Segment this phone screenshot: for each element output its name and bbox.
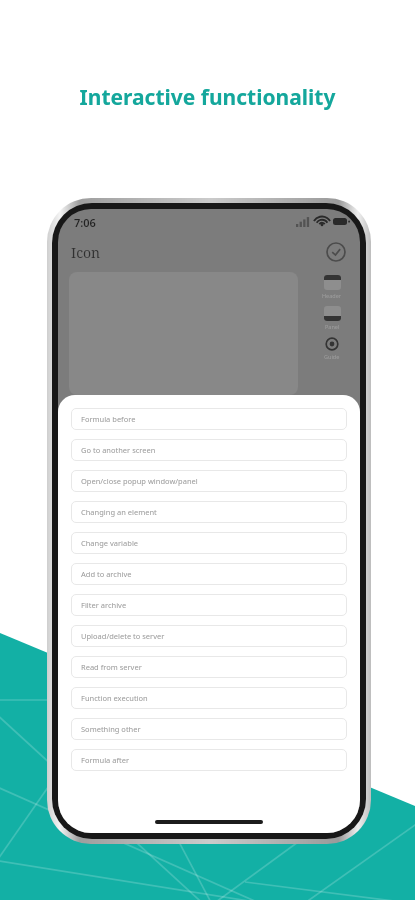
button[interactable]: Read from server: [71, 656, 347, 678]
button[interactable]: Formula after: [71, 749, 347, 771]
staticText: Interactive functionality: [0, 83, 415, 112]
staticText: Function execution: [81, 693, 148, 703]
staticText: Open/close popup window/panel: [81, 476, 198, 486]
staticText: Change variable: [81, 538, 139, 548]
button[interactable]: Guide: [324, 337, 340, 360]
button[interactable]: Formula before: [71, 408, 347, 430]
button[interactable]: Verified: [325, 241, 347, 263]
staticText: Formula before: [81, 414, 136, 424]
staticText: Something other: [81, 724, 141, 734]
button[interactable]: Open/close popup window/panel: [71, 470, 347, 492]
button[interactable]: Changing an element: [71, 501, 347, 523]
staticText: 7:06: [74, 215, 96, 230]
staticText: Filter archive: [81, 600, 127, 610]
staticText: Formula after: [81, 755, 130, 765]
button[interactable]: Upload/delete to server: [71, 625, 347, 647]
staticText: Add to archive: [81, 569, 132, 579]
staticText: Header: [322, 292, 342, 299]
button[interactable]: Something other: [71, 718, 347, 740]
button[interactable]: Go to another screen: [71, 439, 347, 461]
button[interactable]: Filter archive: [71, 594, 347, 616]
staticText: Guide: [324, 353, 340, 360]
button[interactable]: Function execution: [71, 687, 347, 709]
staticText: Changing an element: [81, 507, 157, 517]
button[interactable]: Panel: [324, 306, 341, 330]
staticText: Icon: [71, 243, 101, 262]
button[interactable]: Add to archive: [71, 563, 347, 585]
staticText: Panel: [325, 323, 340, 330]
staticText: Go to another screen: [81, 445, 156, 455]
staticText: Upload/delete to server: [81, 631, 165, 641]
staticText: Read from server: [81, 662, 142, 672]
button[interactable]: Header: [322, 275, 342, 299]
button[interactable]: Change variable: [71, 532, 347, 554]
